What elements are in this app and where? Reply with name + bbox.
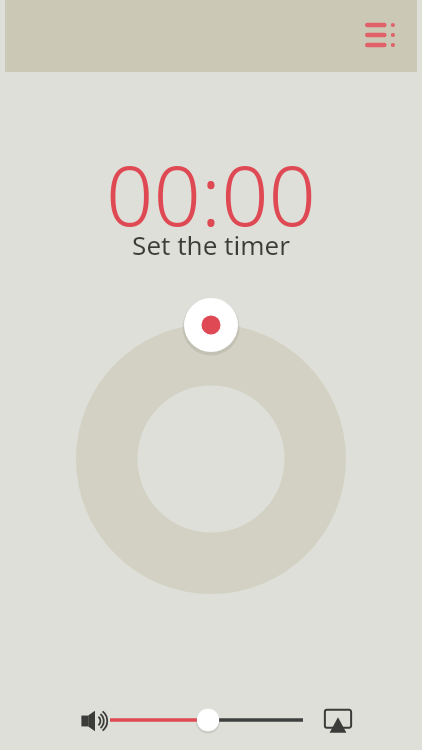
staticText: 00:00 <box>106 137 316 250</box>
button[interactable]: Volume <box>78 704 112 738</box>
button[interactable]: AirPlay <box>322 704 354 736</box>
button[interactable]: Timer dial <box>76 324 346 594</box>
staticText: Set the timer <box>132 227 290 262</box>
button[interactable]: Menu <box>5 0 417 72</box>
button[interactable]: Menu <box>357 12 403 58</box>
